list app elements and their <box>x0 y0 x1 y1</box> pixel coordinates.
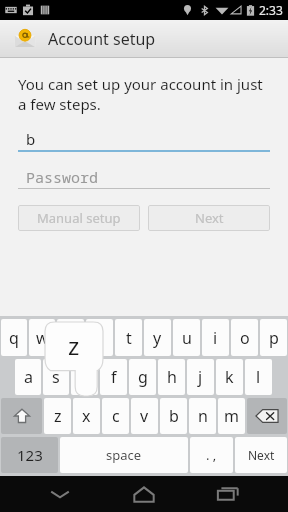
staticText: y <box>153 327 162 349</box>
button[interactable]: Email app icon <box>13 27 37 51</box>
button[interactable]: . , <box>190 437 233 473</box>
button[interactable]: v <box>131 398 158 434</box>
button[interactable]: e <box>57 319 84 356</box>
staticText: t <box>126 327 132 349</box>
button[interactable]: q <box>1 319 27 356</box>
button[interactable]: Password <box>18 166 270 189</box>
staticText: z <box>68 329 80 362</box>
staticText: e <box>66 327 76 349</box>
staticText: j <box>198 366 203 388</box>
button[interactable]: Recent apps <box>204 476 252 512</box>
button[interactable]: Next <box>148 205 270 231</box>
staticText: i <box>213 327 218 349</box>
button[interactable]: Next <box>235 437 287 473</box>
button[interactable]: 123 <box>1 437 58 473</box>
staticText: a <box>24 366 33 388</box>
button[interactable]: t <box>115 319 142 356</box>
staticText: space <box>106 446 142 464</box>
staticText: h <box>167 366 177 388</box>
staticText: q <box>9 327 19 349</box>
button[interactable]: o <box>231 319 258 356</box>
button[interactable]: p <box>260 319 287 356</box>
button[interactable]: b <box>18 128 270 152</box>
staticText: n <box>198 405 208 427</box>
button[interactable]: h <box>158 359 185 395</box>
button[interactable]: Manual setup <box>18 205 140 231</box>
button[interactable]: s <box>43 359 69 395</box>
staticText: r <box>96 327 103 349</box>
staticText: c <box>112 405 120 427</box>
button[interactable]: Home <box>120 476 168 512</box>
staticText: Account setup <box>48 28 156 50</box>
button[interactable]: n <box>189 398 216 434</box>
staticText: 2:33 <box>259 2 283 18</box>
staticText: s <box>52 366 60 388</box>
staticText: Next <box>195 209 224 227</box>
button[interactable]: Shift <box>1 398 42 434</box>
button[interactable]: w <box>29 319 55 356</box>
button[interactable]: z <box>44 398 71 434</box>
staticText: . , <box>206 446 217 464</box>
button[interactable]: space <box>60 437 188 473</box>
button[interactable]: g <box>129 359 156 395</box>
staticText: k <box>225 366 234 388</box>
button[interactable]: Backspace <box>247 398 287 434</box>
button[interactable]: a <box>15 359 41 395</box>
staticText: l <box>256 366 261 388</box>
staticText: v <box>140 405 149 427</box>
button[interactable]: x <box>73 398 100 434</box>
staticText: 123 <box>17 445 43 465</box>
button[interactable]: r <box>86 319 113 356</box>
button[interactable]: c <box>102 398 129 434</box>
staticText: You can set up your account in just a fe… <box>18 74 270 114</box>
button[interactable]: i <box>202 319 229 356</box>
button[interactable]: k <box>216 359 243 395</box>
staticText: p <box>269 327 279 349</box>
staticText: Password <box>26 167 99 187</box>
staticText: w <box>36 327 49 349</box>
staticText: o <box>240 327 250 349</box>
button[interactable]: d <box>71 359 98 395</box>
button[interactable]: b <box>160 398 187 434</box>
button[interactable]: l <box>245 359 272 395</box>
button[interactable]: j <box>187 359 214 395</box>
staticText: b <box>26 129 36 149</box>
button[interactable]: Back <box>36 476 84 512</box>
staticText: f <box>111 366 117 388</box>
staticText: x <box>82 405 91 427</box>
button[interactable]: y <box>144 319 171 356</box>
button[interactable]: m <box>218 398 245 434</box>
staticText: Manual setup <box>37 209 121 227</box>
staticText: Next <box>248 447 275 463</box>
button[interactable]: f <box>100 359 127 395</box>
staticText: z <box>54 405 62 427</box>
staticText: u <box>182 327 192 349</box>
staticText: b <box>169 405 179 427</box>
staticText: m <box>224 405 239 427</box>
staticText: g <box>138 366 148 388</box>
button[interactable]: u <box>173 319 200 356</box>
